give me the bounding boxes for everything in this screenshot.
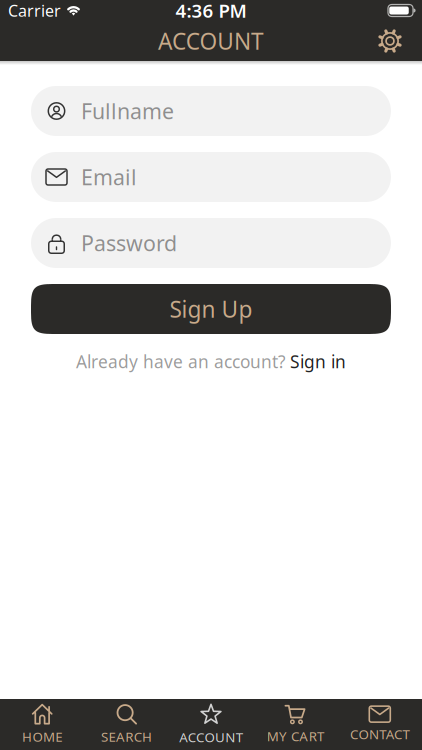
staticText: ACCOUNT	[158, 26, 264, 56]
staticText: Already have an account?	[76, 350, 286, 373]
staticText: Sign in	[290, 350, 346, 373]
button[interactable]: CONTACT	[338, 706, 422, 743]
button[interactable]: HOME	[0, 704, 84, 745]
staticText: Fullname	[81, 97, 174, 125]
staticText: SEARCH	[101, 728, 152, 745]
button[interactable]: Sign Up	[31, 284, 391, 334]
staticText: MY CART	[267, 727, 324, 745]
staticText: ACCOUNT	[179, 728, 243, 746]
staticText: HOME	[22, 728, 62, 745]
button[interactable]: SEARCH	[84, 704, 169, 745]
staticText: Email	[81, 163, 137, 191]
button[interactable]: ACCOUNT	[169, 703, 253, 746]
staticText: 4:36 PM	[175, 0, 246, 23]
staticText: Password	[81, 229, 177, 257]
button[interactable]: Settings	[378, 29, 422, 53]
button[interactable]: MY CART	[253, 704, 338, 745]
staticText: CONTACT	[350, 725, 409, 743]
button[interactable]: Already have an account?	[76, 350, 346, 373]
staticText: Carrier	[8, 0, 61, 21]
staticText: Sign Up	[169, 294, 252, 324]
